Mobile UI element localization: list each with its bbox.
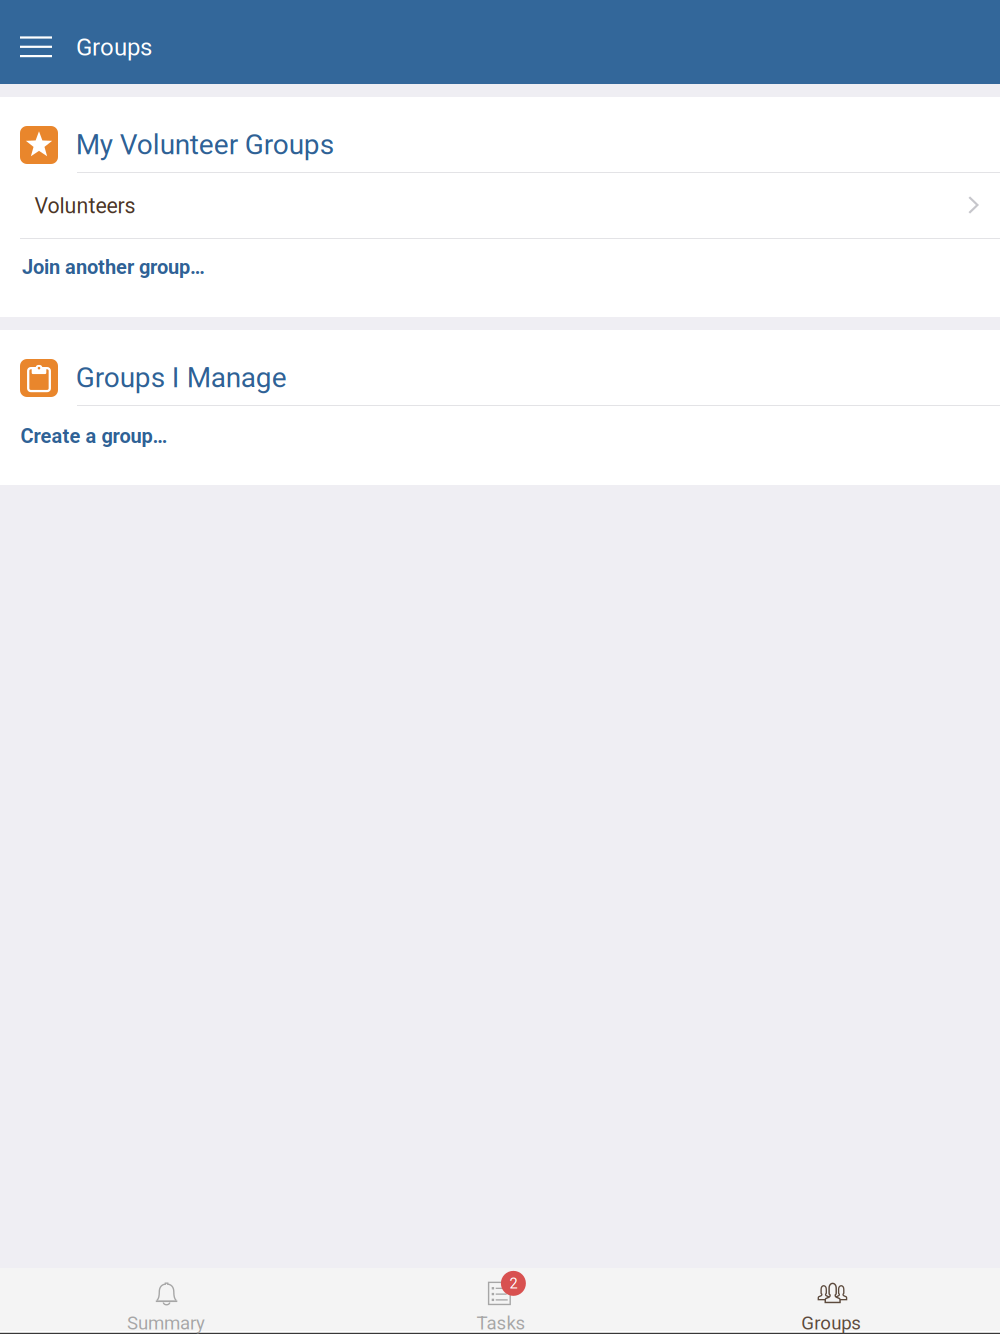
button[interactable]: Groups xyxy=(667,1268,1000,1334)
staticText: Groups xyxy=(76,33,152,61)
staticText: Create a group… xyxy=(20,424,167,448)
staticText: Tasks xyxy=(476,1312,525,1334)
button[interactable]: Volunteers xyxy=(0,172,1000,238)
staticText: Summary xyxy=(127,1312,205,1334)
button[interactable]: Create a group… xyxy=(0,405,1000,461)
staticText: Groups I Manage xyxy=(76,361,287,394)
button[interactable]: Join another group… xyxy=(0,239,1000,295)
staticText: 2 xyxy=(509,1275,517,1292)
staticText: Join another group… xyxy=(22,255,205,279)
button[interactable]: Summary xyxy=(0,1268,333,1334)
staticText: My Volunteer Groups xyxy=(76,128,334,161)
staticText: Volunteers xyxy=(34,193,135,218)
button[interactable]: Tasks, 2 new xyxy=(333,1268,667,1334)
staticText: Groups xyxy=(801,1312,861,1334)
button[interactable]: Menu xyxy=(8,24,64,69)
